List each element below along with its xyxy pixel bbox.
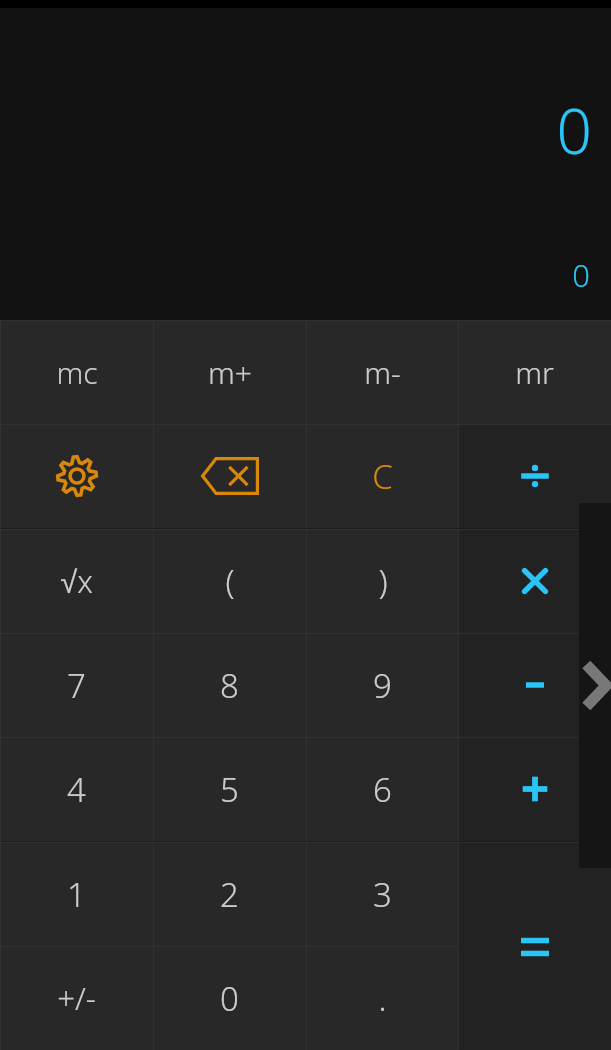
button[interactable]: 7: [0, 633, 153, 737]
button[interactable]: Equals: [458, 842, 611, 1050]
staticText: 5: [220, 767, 239, 812]
staticText: 2: [220, 872, 239, 917]
staticText: 7: [67, 663, 86, 708]
staticText: √x: [60, 560, 93, 602]
button[interactable]: 5: [153, 737, 306, 841]
button[interactable]: m-: [306, 320, 459, 424]
staticText: +/-: [57, 977, 96, 1019]
button[interactable]: 0: [0, 8, 611, 320]
staticText: .: [378, 976, 387, 1021]
button[interactable]: +/-: [0, 946, 153, 1050]
staticText: mc: [56, 352, 98, 393]
button[interactable]: Backspace: [153, 424, 306, 528]
button[interactable]: mc: [0, 320, 153, 424]
button[interactable]: Divide: [458, 424, 611, 528]
staticText: m+: [208, 352, 252, 393]
staticText: C: [372, 454, 393, 499]
staticText: 0: [572, 254, 590, 296]
button[interactable]: .: [306, 946, 459, 1050]
button[interactable]: Minus: [458, 633, 611, 737]
staticText: 3: [373, 872, 392, 917]
staticText: 4: [67, 767, 86, 812]
button[interactable]: (: [153, 529, 306, 633]
button[interactable]: 1: [0, 842, 153, 946]
staticText: 8: [220, 663, 239, 708]
button[interactable]: 4: [0, 737, 153, 841]
button[interactable]: 8: [153, 633, 306, 737]
button[interactable]: m+: [153, 320, 306, 424]
button[interactable]: ): [306, 529, 459, 633]
button[interactable]: 9: [306, 633, 459, 737]
button[interactable]: Open history panel: [579, 503, 611, 868]
button[interactable]: 2: [153, 842, 306, 946]
button[interactable]: C: [306, 424, 459, 528]
button[interactable]: 3: [306, 842, 459, 946]
staticText: (: [225, 559, 235, 604]
button[interactable]: mr: [458, 320, 611, 424]
button[interactable]: 0: [153, 946, 306, 1050]
staticText: 9: [373, 663, 392, 708]
staticText: 0: [556, 88, 592, 172]
staticText: 6: [373, 767, 392, 812]
button[interactable]: Plus: [458, 737, 611, 841]
button[interactable]: Settings: [0, 424, 153, 528]
staticText: 1: [67, 872, 86, 917]
button[interactable]: √x: [0, 529, 153, 633]
staticText: mr: [515, 352, 554, 393]
button[interactable]: 6: [306, 737, 459, 841]
button[interactable]: Multiply: [458, 529, 611, 633]
staticText: m-: [364, 352, 401, 393]
staticText: 0: [220, 976, 239, 1021]
staticText: ): [378, 559, 388, 604]
